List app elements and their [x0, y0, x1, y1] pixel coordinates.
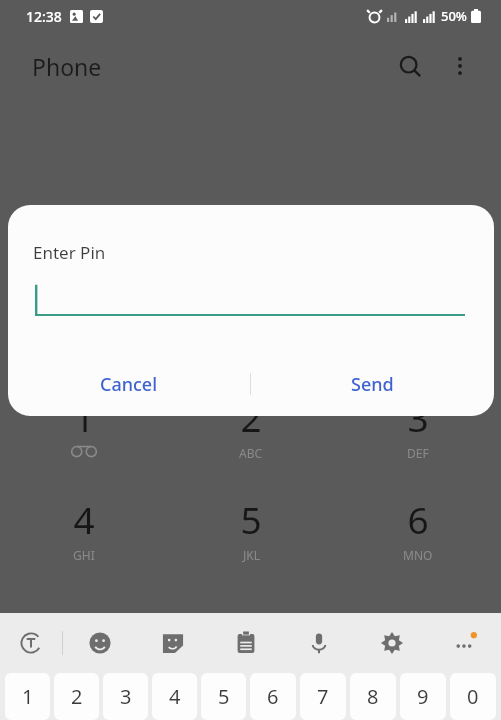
staticText: 4 [169, 683, 181, 710]
button[interactable]: 4 [152, 673, 197, 720]
button[interactable]: Settings [355, 613, 428, 673]
staticText: Cancel [100, 372, 158, 397]
button[interactable]: 0 [450, 673, 496, 720]
staticText: 9 [417, 683, 429, 710]
button[interactable]: 4 [0, 494, 167, 574]
button[interactable]: Cancel [8, 352, 250, 416]
staticText: 1 [73, 392, 95, 442]
staticText: 6 [407, 494, 429, 544]
button[interactable]: Emoji [63, 613, 136, 673]
staticText: ABC [239, 445, 263, 461]
button[interactable]: 6 [250, 673, 296, 720]
button[interactable]: 1 [5, 673, 50, 720]
staticText: 4 [73, 494, 95, 544]
staticText: 6 [267, 683, 279, 710]
button[interactable]: 5 [167, 494, 334, 574]
button[interactable]: More [428, 613, 501, 673]
staticText: 8 [367, 683, 379, 710]
staticText: 5 [218, 683, 230, 710]
staticText: JKL [243, 547, 260, 563]
staticText: Send [351, 372, 394, 397]
button[interactable]: 1 [0, 392, 167, 472]
staticText: 0 [467, 683, 479, 710]
button[interactable]: Stickers [136, 613, 209, 673]
staticText: 50% [441, 7, 467, 25]
staticText: DEF [407, 445, 429, 461]
button[interactable]: Translate [0, 613, 62, 673]
staticText: Enter Pin [33, 241, 106, 264]
button[interactable]: 8 [350, 673, 396, 720]
staticText: Phone [32, 51, 102, 82]
staticText: 7 [317, 683, 329, 710]
button[interactable]: 6 [334, 494, 501, 574]
button[interactable]: 2 [167, 392, 334, 472]
button[interactable]: Clipboard [209, 613, 282, 673]
staticText: GHI [73, 547, 95, 563]
button[interactable]: 3 [103, 673, 148, 720]
staticText: 1 [22, 683, 34, 710]
staticText: 5 [240, 494, 262, 544]
button[interactable]: Search [387, 43, 433, 89]
staticText: 3 [120, 683, 132, 710]
button[interactable]: 2 [54, 673, 99, 720]
staticText: MNO [403, 547, 433, 563]
button[interactable]: 5 [201, 673, 246, 720]
button[interactable]: More options [437, 43, 483, 89]
button[interactable]: Send [251, 352, 494, 416]
staticText: 12:38 [26, 7, 62, 26]
staticText: 2 [71, 683, 83, 710]
button[interactable]: 9 [400, 673, 446, 720]
button[interactable]: 3 [334, 392, 501, 472]
button[interactable]: 7 [300, 673, 346, 720]
button[interactable]: Voice input [282, 613, 355, 673]
staticText: 2 [240, 392, 262, 442]
staticText: 3 [407, 392, 429, 442]
